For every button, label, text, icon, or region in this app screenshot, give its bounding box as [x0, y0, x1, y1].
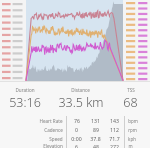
staticText: Duration — [15, 87, 35, 93]
staticText: 76 — [74, 117, 80, 124]
staticText: 0 — [75, 126, 78, 133]
button[interactable]: Duration — [0, 86, 50, 112]
staticText: m — [128, 143, 133, 148]
button[interactable]: Distance — [50, 86, 111, 112]
staticText: Cadence — [44, 127, 63, 133]
staticText: 48 — [93, 143, 99, 148]
staticText: rpm — [128, 127, 137, 133]
staticText: 37.8 — [90, 135, 101, 142]
button[interactable]: Speed — [0, 134, 150, 143]
staticText: kph — [128, 136, 136, 142]
staticText: Heart Rate — [39, 118, 63, 124]
button[interactable]: Cadence — [0, 125, 150, 134]
staticText: 143 — [110, 117, 119, 124]
staticText: bpm — [128, 118, 138, 124]
staticText: TSS — [127, 87, 135, 93]
staticText: 0:00 — [71, 135, 82, 142]
staticText: 112 — [110, 126, 119, 133]
button[interactable]: Heart Rate — [0, 116, 150, 125]
staticText: 6 — [75, 143, 78, 148]
button[interactable]: Elevation — [0, 143, 150, 148]
staticText: Elevation — [43, 143, 63, 148]
staticText: 33.5 km — [58, 94, 104, 111]
staticText: 272 — [110, 143, 119, 148]
staticText: 131 — [91, 117, 100, 124]
staticText: 89 — [93, 126, 99, 133]
button[interactable]: TSS — [111, 86, 150, 112]
button[interactable]: Activity chart — [0, 0, 150, 82]
staticText: 71.7 — [109, 135, 120, 142]
staticText: Distance — [71, 87, 90, 93]
staticText: Speed — [49, 136, 63, 142]
staticText: 68 — [123, 94, 138, 111]
staticText: 53:16 — [9, 94, 41, 111]
